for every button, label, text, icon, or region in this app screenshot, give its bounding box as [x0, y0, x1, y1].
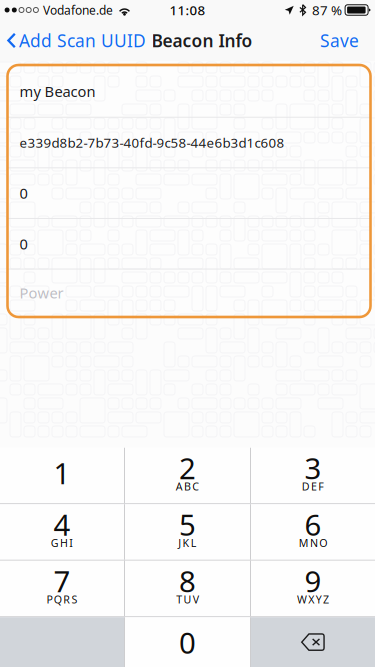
staticText: 7: [53, 561, 70, 600]
staticText: Add Scan UUID: [19, 29, 146, 52]
staticText: Power: [19, 283, 63, 302]
staticText: 2: [179, 448, 196, 487]
button[interactable]: 3: [251, 448, 375, 503]
staticText: Beacon Info: [151, 29, 252, 52]
staticText: 8: [179, 561, 196, 600]
button[interactable]: 0: [7, 168, 370, 218]
staticText: Vodafone.de: [43, 2, 113, 18]
staticText: 0: [179, 623, 196, 662]
staticText: ABC: [176, 479, 199, 493]
button[interactable]: 2: [125, 448, 250, 503]
button[interactable]: Delete: [251, 617, 375, 667]
staticText: GHI: [51, 536, 73, 550]
staticText: 6: [304, 505, 321, 544]
staticText: 3: [304, 448, 321, 487]
button[interactable]: 0: [7, 219, 370, 268]
staticText: 1: [53, 453, 70, 492]
staticText: 5: [179, 505, 196, 544]
staticText: MNO: [299, 536, 327, 550]
staticText: 4: [53, 505, 70, 544]
staticText: JKL: [178, 536, 197, 550]
button[interactable]: 4: [0, 504, 124, 560]
button[interactable]: Add Scan UUID: [0, 20, 151, 61]
button[interactable]: 1: [0, 448, 124, 503]
staticText: DEF: [302, 479, 324, 493]
staticText: e339d8b2-7b73-40fd-9c58-44e6b3d1c608: [19, 134, 284, 151]
staticText: PQRS: [47, 592, 77, 606]
staticText: my Beacon: [19, 82, 95, 101]
staticText: 0: [19, 234, 27, 253]
staticText: 87 %: [312, 1, 342, 19]
staticText: Save: [320, 29, 359, 52]
staticText: 11:08: [169, 1, 205, 19]
button[interactable]: my Beacon: [7, 66, 370, 117]
staticText: WXYZ: [297, 592, 329, 606]
button[interactable]: 8: [125, 561, 250, 616]
button[interactable]: 9: [251, 561, 375, 616]
button[interactable]: 6: [251, 504, 375, 560]
button[interactable]: e339d8b2-7b73-40fd-9c58-44e6b3d1c608: [7, 118, 370, 167]
staticText: 0: [19, 183, 27, 203]
button[interactable]: Save: [308, 20, 375, 61]
staticText: 9: [304, 561, 321, 600]
button[interactable]: Power: [7, 270, 370, 316]
staticText: TUV: [176, 592, 199, 606]
button[interactable]: 0: [125, 617, 250, 667]
button[interactable]: 7: [0, 561, 124, 616]
button[interactable]: 5: [125, 504, 250, 560]
